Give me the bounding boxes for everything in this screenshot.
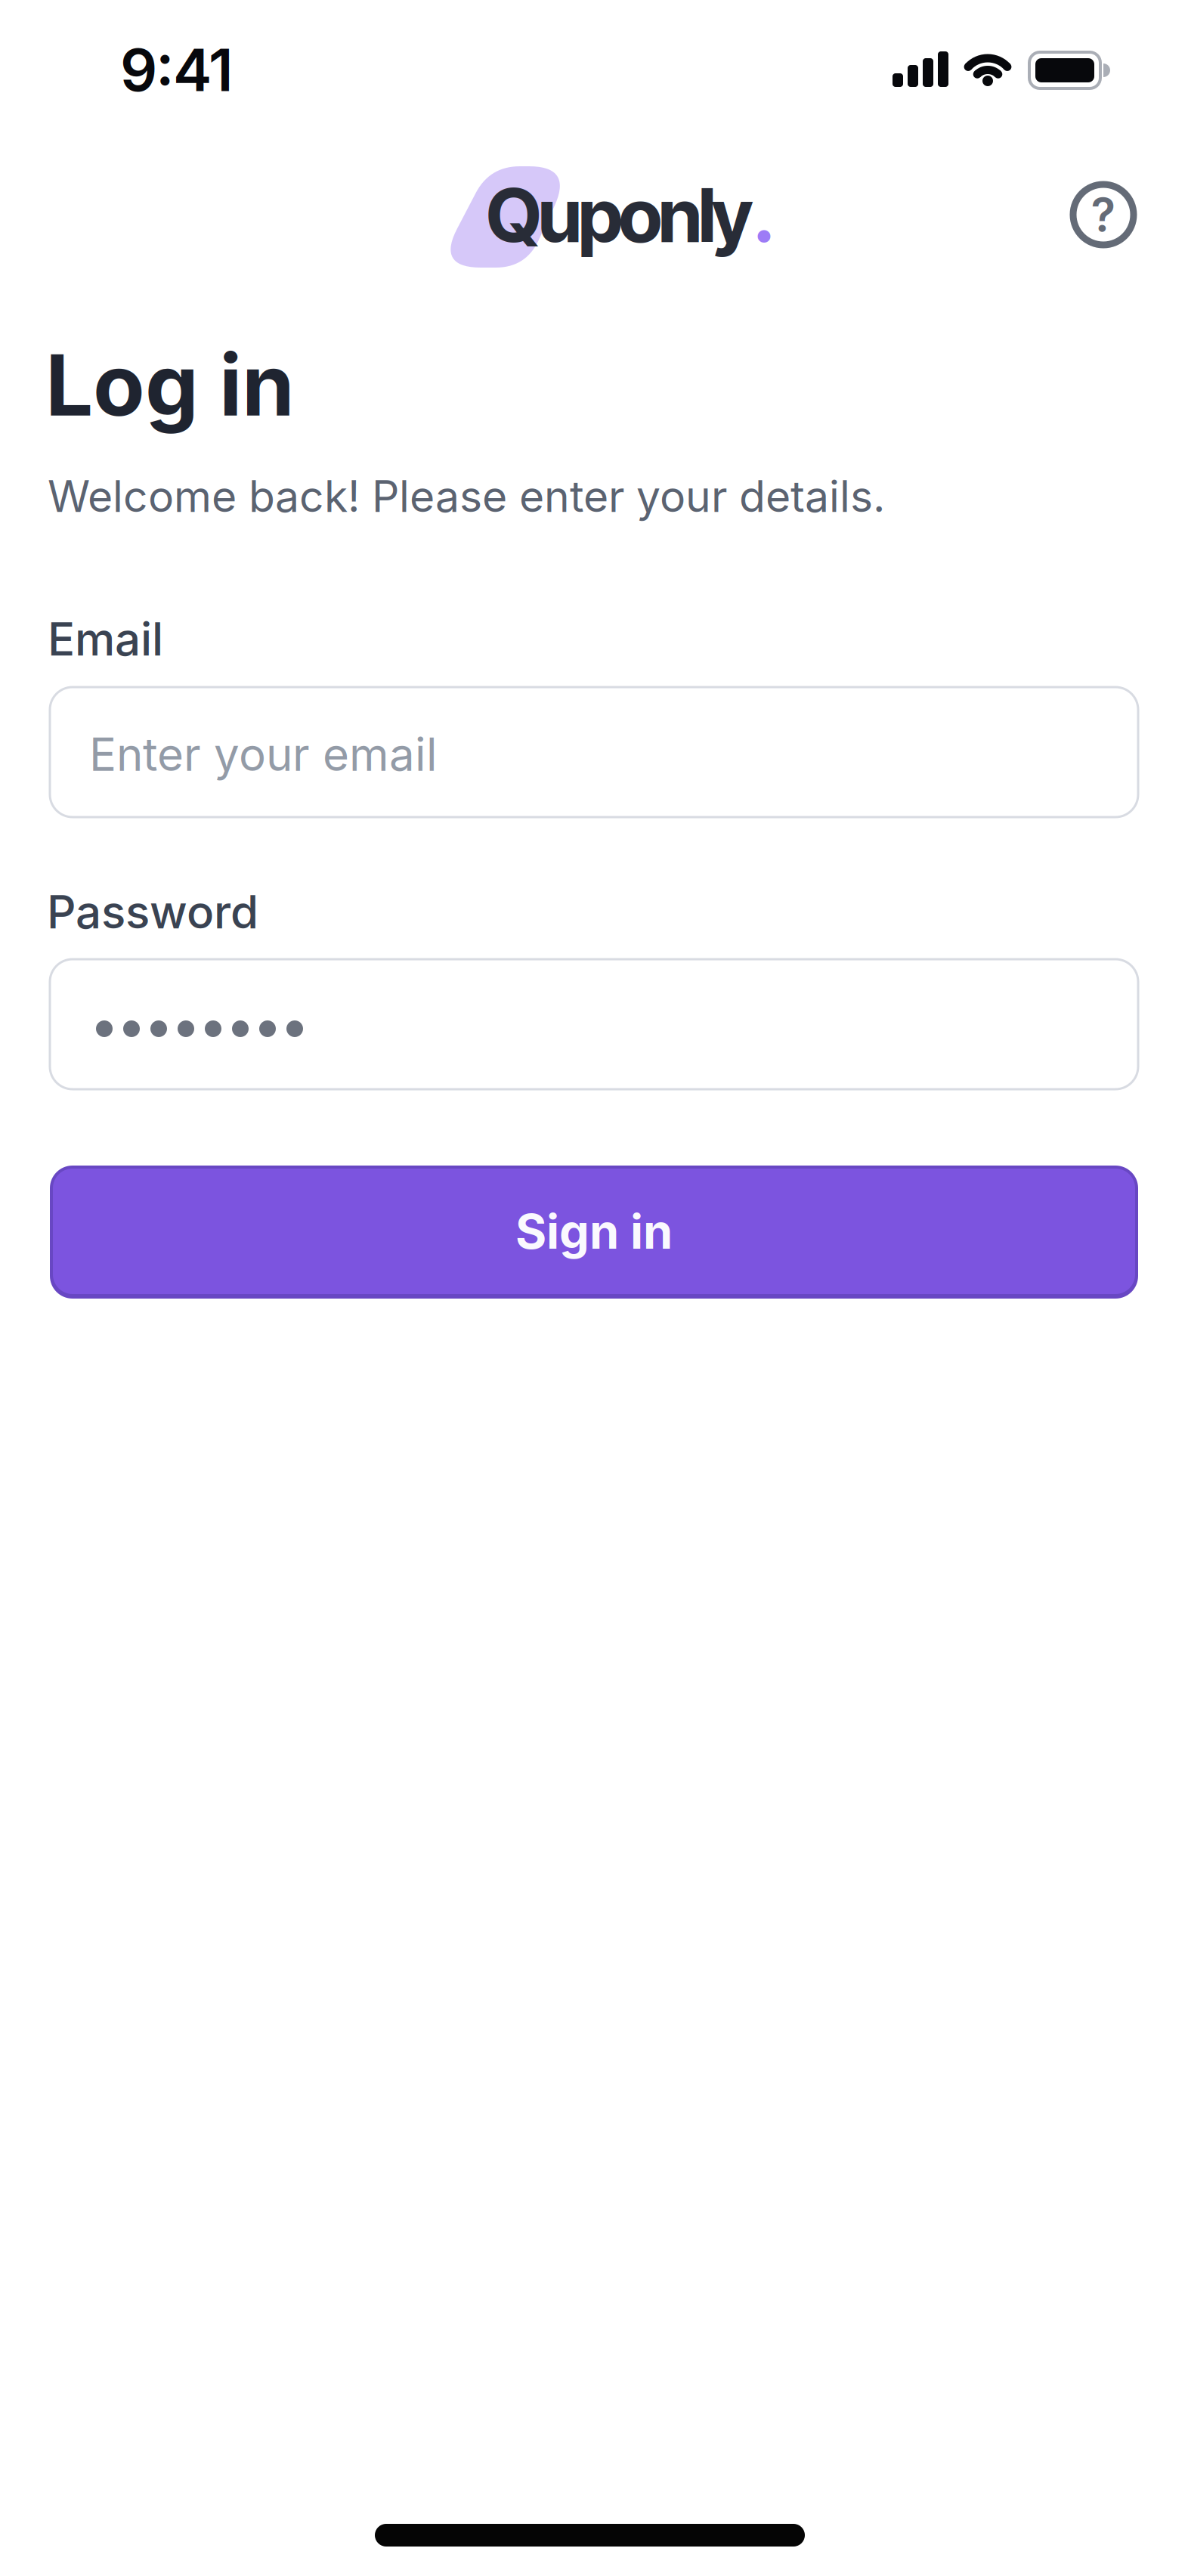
staticText: . — [753, 170, 775, 260]
staticText: ? — [1091, 188, 1116, 241]
staticText: Welcome back! Please enter your details. — [48, 471, 885, 522]
staticText: Email — [48, 612, 163, 666]
staticText: Sign in — [515, 1203, 673, 1259]
textField[interactable]: Enter your email — [50, 687, 1138, 817]
button[interactable]: Sign in — [50, 1166, 1138, 1299]
secureTextField[interactable]: password — [50, 959, 1138, 1089]
staticText: 9:41 — [120, 36, 234, 104]
staticText: Enter your email — [89, 728, 438, 781]
staticText: Password — [47, 885, 258, 939]
button[interactable]: Help — [1070, 181, 1137, 248]
staticText: Quponly — [486, 170, 753, 260]
staticText: Log in — [45, 335, 295, 435]
